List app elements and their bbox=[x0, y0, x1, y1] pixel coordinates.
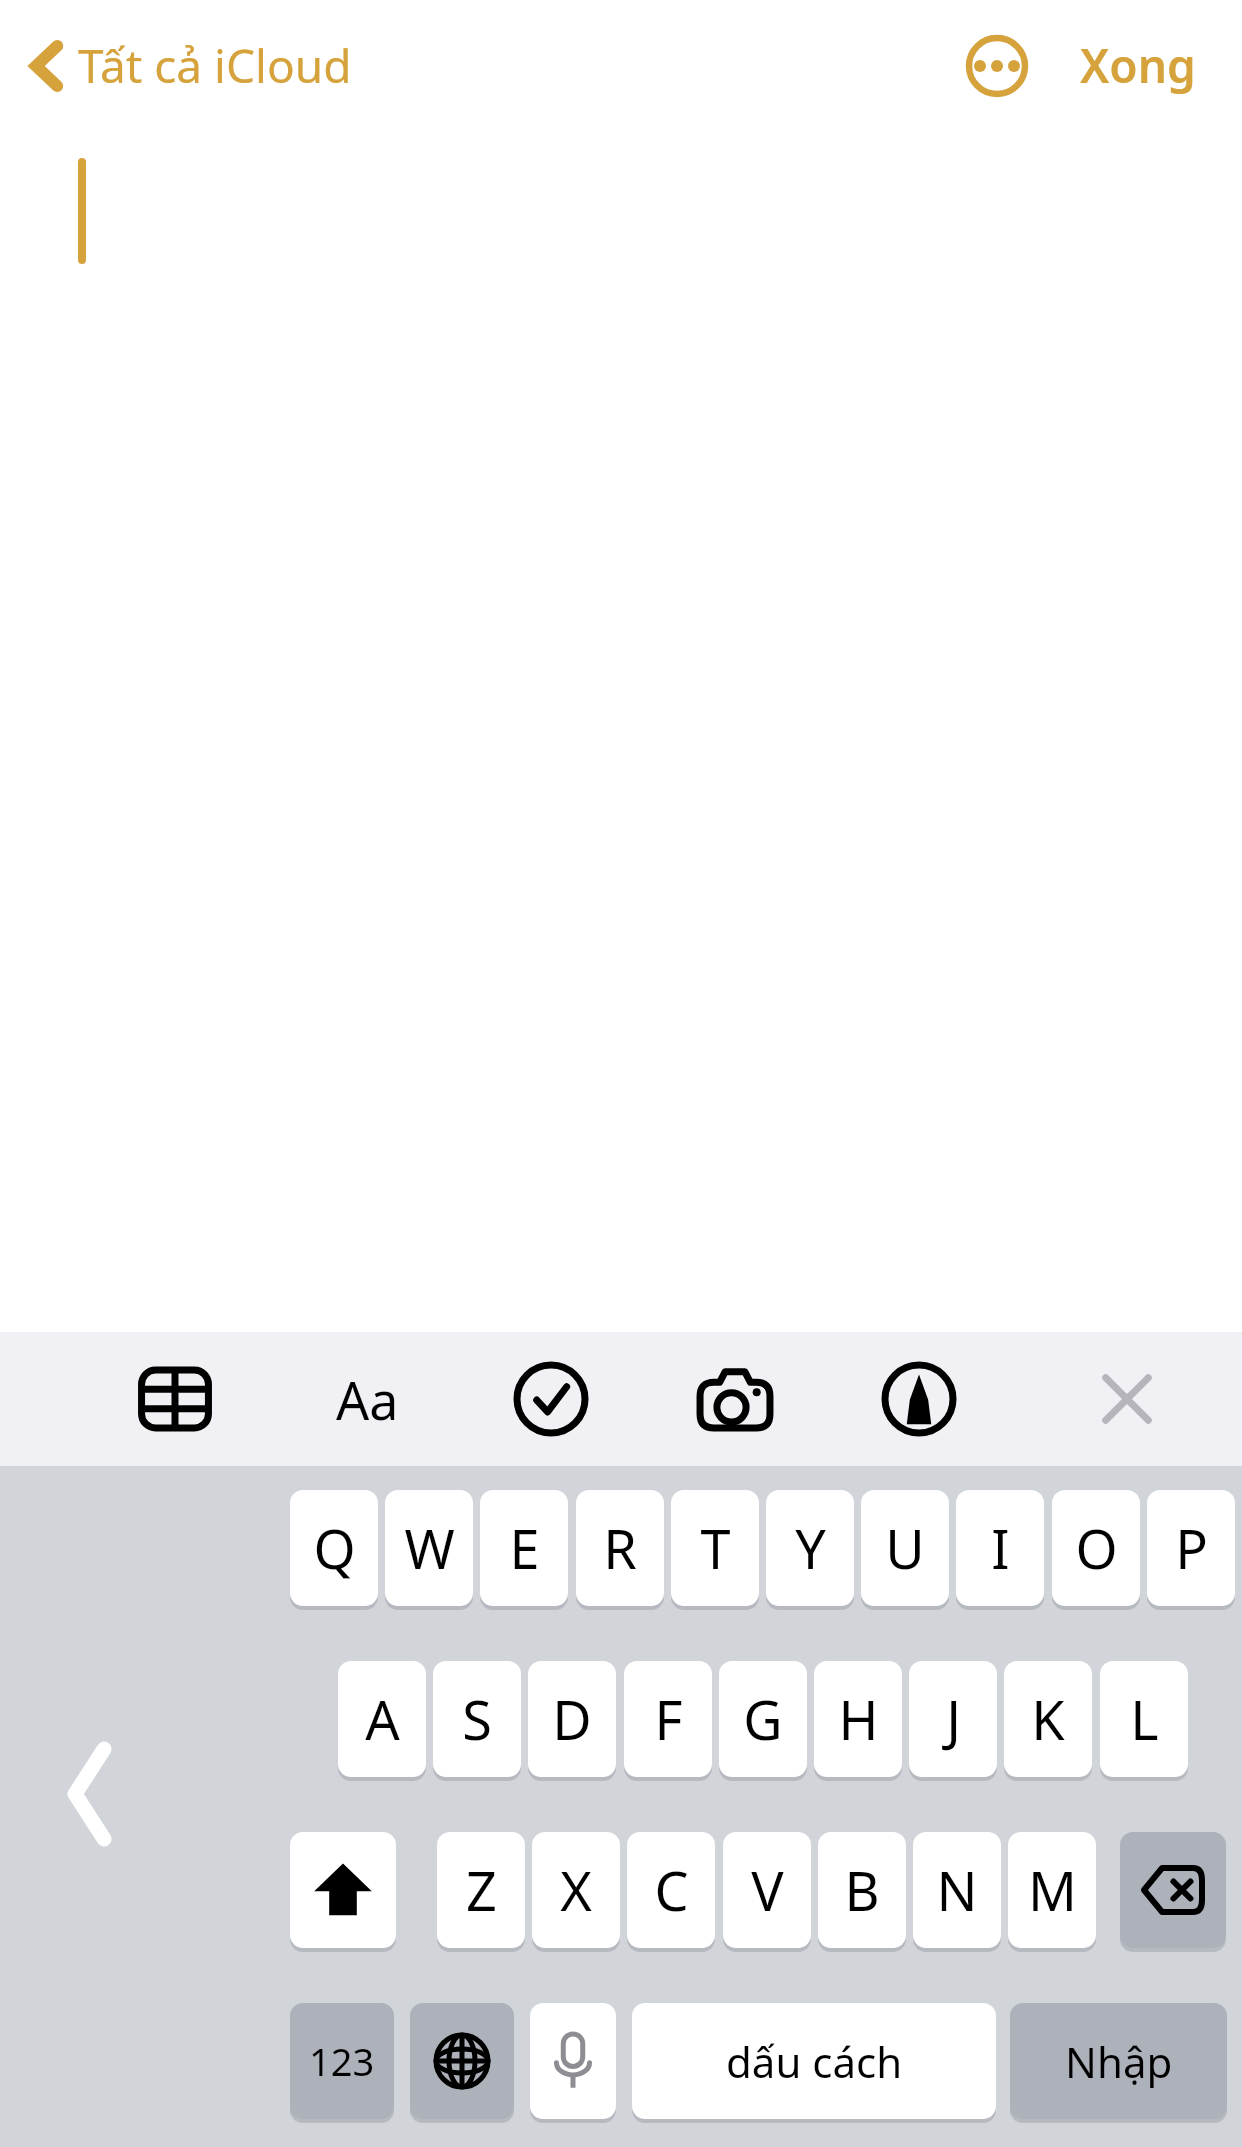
staticText: Z bbox=[466, 1853, 497, 1927]
staticText: T bbox=[700, 1511, 731, 1585]
staticText: V bbox=[751, 1853, 784, 1927]
button[interactable]: W bbox=[385, 1490, 473, 1606]
staticText: Y bbox=[795, 1511, 826, 1585]
button[interactable]: B bbox=[818, 1832, 906, 1948]
button[interactable]: Markup bbox=[861, 1341, 977, 1457]
staticText: R bbox=[603, 1511, 637, 1585]
button[interactable]: Dictation bbox=[530, 2003, 616, 2119]
button[interactable]: L bbox=[1100, 1661, 1188, 1777]
button[interactable]: X bbox=[532, 1832, 620, 1948]
staticText: P bbox=[1175, 1511, 1208, 1585]
staticText: G bbox=[743, 1682, 783, 1756]
staticText: Nhập bbox=[1065, 2033, 1173, 2090]
staticText: S bbox=[462, 1682, 492, 1756]
staticText: I bbox=[991, 1511, 1010, 1585]
button[interactable]: H bbox=[814, 1661, 902, 1777]
button[interactable]: Numbers bbox=[290, 2003, 394, 2119]
staticText: dấu cách bbox=[726, 2033, 903, 2090]
button[interactable]: U bbox=[861, 1490, 949, 1606]
button[interactable]: Next keyboard bbox=[410, 2003, 514, 2119]
staticText: Q bbox=[313, 1511, 356, 1585]
button[interactable]: Shift bbox=[290, 1832, 396, 1948]
button[interactable]: More options bbox=[958, 27, 1036, 105]
button[interactable]: Hide keyboard bbox=[1069, 1341, 1185, 1457]
staticText: E bbox=[509, 1511, 540, 1585]
staticText: 123 bbox=[309, 2035, 375, 2087]
staticText: Tất cả iCloud bbox=[78, 34, 352, 97]
button[interactable]: T bbox=[671, 1490, 759, 1606]
button[interactable]: N bbox=[913, 1832, 1001, 1948]
button[interactable]: Expand keyboard bbox=[50, 1734, 130, 1854]
button[interactable]: O bbox=[1052, 1490, 1140, 1606]
staticText: Xong bbox=[1080, 34, 1196, 97]
staticText: M bbox=[1028, 1853, 1077, 1927]
button[interactable]: Camera bbox=[677, 1341, 793, 1457]
staticText: D bbox=[552, 1682, 592, 1756]
button[interactable]: dấu cách bbox=[632, 2003, 996, 2119]
button[interactable]: A bbox=[338, 1661, 426, 1777]
button[interactable]: S bbox=[433, 1661, 521, 1777]
button[interactable]: Nhập bbox=[1010, 2003, 1227, 2119]
button[interactable]: Delete bbox=[1120, 1832, 1226, 1948]
staticText: H bbox=[838, 1682, 879, 1756]
button[interactable]: Table bbox=[117, 1341, 233, 1457]
button[interactable]: Z bbox=[437, 1832, 525, 1948]
staticText: N bbox=[936, 1853, 978, 1927]
button[interactable]: P bbox=[1147, 1490, 1235, 1606]
staticText: C bbox=[654, 1853, 689, 1927]
button[interactable]: E bbox=[480, 1490, 568, 1606]
staticText: Aa bbox=[336, 1364, 399, 1435]
button[interactable]: K bbox=[1004, 1661, 1092, 1777]
button[interactable]: I bbox=[956, 1490, 1044, 1606]
button[interactable]: Tất cả iCloud bbox=[24, 24, 358, 107]
staticText: B bbox=[844, 1853, 880, 1927]
staticText: J bbox=[946, 1682, 961, 1756]
button[interactable]: J bbox=[909, 1661, 997, 1777]
button[interactable]: R bbox=[576, 1490, 664, 1606]
staticText: W bbox=[404, 1511, 455, 1585]
staticText: L bbox=[1130, 1682, 1159, 1756]
staticText: F bbox=[654, 1682, 683, 1756]
button[interactable]: M bbox=[1008, 1832, 1096, 1948]
button[interactable]: Text format bbox=[309, 1341, 425, 1457]
button[interactable]: F bbox=[624, 1661, 712, 1777]
staticText: K bbox=[1031, 1682, 1065, 1756]
button[interactable]: G bbox=[719, 1661, 807, 1777]
button[interactable]: Y bbox=[766, 1490, 854, 1606]
button[interactable]: Checklist bbox=[493, 1341, 609, 1457]
staticText: U bbox=[885, 1511, 925, 1585]
button[interactable]: Q bbox=[290, 1490, 378, 1606]
staticText: O bbox=[1075, 1511, 1118, 1585]
button[interactable]: Xong bbox=[1074, 24, 1202, 107]
button[interactable]: D bbox=[528, 1661, 616, 1777]
button[interactable]: C bbox=[627, 1832, 715, 1948]
staticText: X bbox=[560, 1853, 592, 1927]
staticText: A bbox=[365, 1682, 400, 1756]
button[interactable]: V bbox=[723, 1832, 811, 1948]
